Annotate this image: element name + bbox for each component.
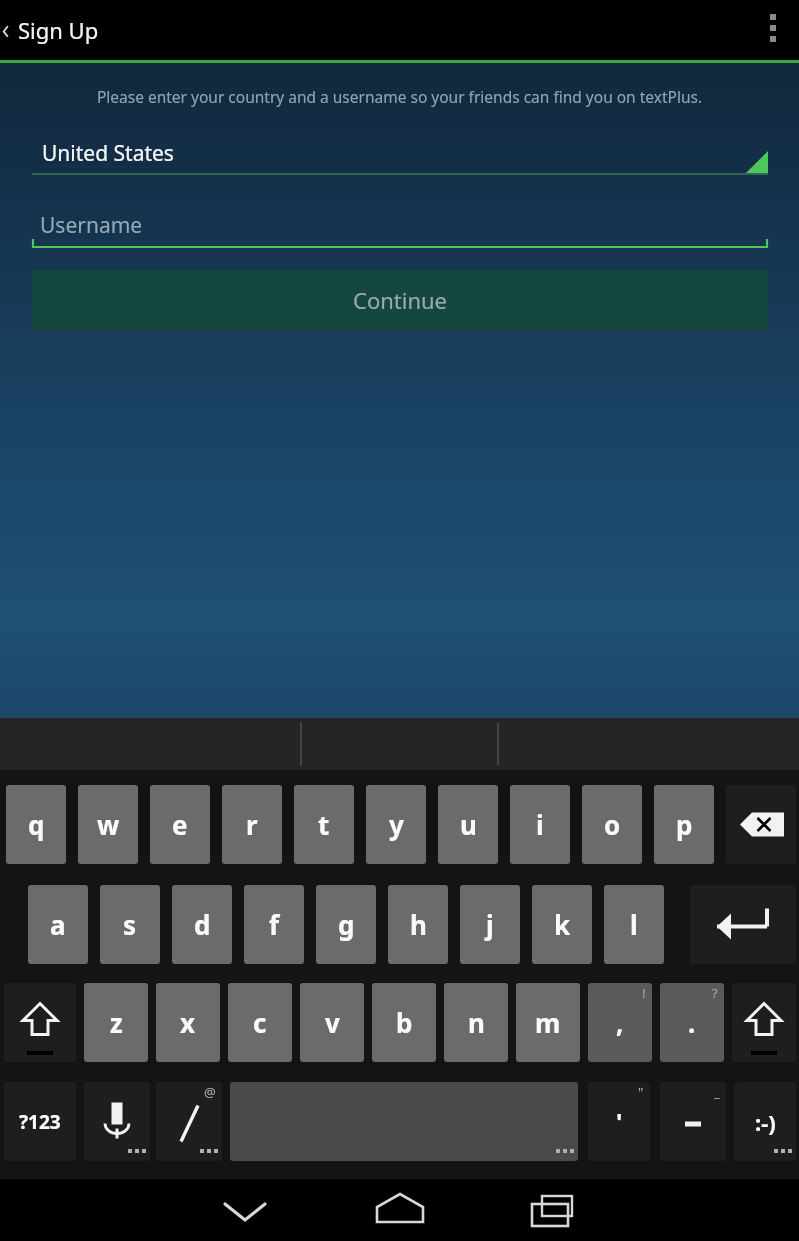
button[interactable]: , <box>588 983 652 1062</box>
staticText: o <box>604 807 621 842</box>
staticText: n <box>468 1005 485 1040</box>
button[interactable]: f <box>244 885 304 964</box>
button[interactable]: z <box>84 983 148 1062</box>
button[interactable]: l <box>604 885 664 964</box>
staticText: m <box>535 1005 561 1040</box>
button[interactable]: More options <box>743 0 799 60</box>
button[interactable]: m <box>516 983 580 1062</box>
staticText: s <box>123 907 137 942</box>
button[interactable]: United States <box>32 128 768 178</box>
button[interactable]: Backspace <box>726 785 796 864</box>
button[interactable]: d <box>172 885 232 964</box>
button[interactable]: Home <box>355 1179 445 1241</box>
button[interactable]: _ <box>660 1082 726 1161</box>
staticText: . <box>688 1005 696 1040</box>
staticText: _ <box>714 1083 720 1101</box>
button[interactable]: ' <box>588 1082 650 1161</box>
staticText: p <box>676 807 693 842</box>
staticText: Sign Up <box>18 15 99 45</box>
button[interactable]: h <box>388 885 448 964</box>
button[interactable]: ‹ <box>0 0 120 60</box>
staticText: z <box>110 1005 123 1040</box>
button[interactable]: ?123 <box>4 1082 76 1161</box>
button[interactable]: x <box>156 983 220 1062</box>
button[interactable]: t <box>294 785 354 864</box>
button[interactable]: s <box>100 885 160 964</box>
staticText: c <box>253 1005 267 1040</box>
button[interactable]: v <box>300 983 364 1062</box>
staticText: ‹ <box>2 10 10 47</box>
staticText: w <box>97 807 120 842</box>
button[interactable]: Enter <box>690 885 796 964</box>
button[interactable]: Continue <box>32 270 768 330</box>
staticText: i <box>536 807 544 842</box>
staticText: f <box>269 907 280 942</box>
staticText: g <box>338 907 355 942</box>
button[interactable]: y <box>366 785 426 864</box>
button[interactable]: Shift <box>4 983 76 1062</box>
staticText: ? <box>712 984 718 1002</box>
staticText: ?123 <box>19 1109 61 1135</box>
staticText: ' <box>616 1105 623 1138</box>
button[interactable]: . <box>660 983 724 1062</box>
staticText: " <box>638 1083 644 1101</box>
staticText: Please enter your country and a username… <box>0 86 799 107</box>
button[interactable]: Voice input <box>84 1082 150 1161</box>
button[interactable]: j <box>460 885 520 964</box>
staticText: @ <box>204 1083 216 1101</box>
button[interactable]: e <box>150 785 210 864</box>
button[interactable]: g <box>316 885 376 964</box>
button[interactable]: Space <box>230 1082 578 1161</box>
button[interactable]: w <box>78 785 138 864</box>
button[interactable]: i <box>510 785 570 864</box>
button[interactable]: @ <box>156 1082 222 1161</box>
button[interactable]: a <box>28 885 88 964</box>
button[interactable]: u <box>438 785 498 864</box>
button[interactable]: Shift <box>732 983 796 1062</box>
button[interactable]: p <box>654 785 714 864</box>
staticText: :-) <box>755 1107 776 1137</box>
staticText: a <box>50 907 66 942</box>
staticText: t <box>318 807 330 842</box>
staticText: k <box>554 907 571 942</box>
staticText: e <box>172 807 188 842</box>
staticText: Continue <box>353 285 448 315</box>
button[interactable]: n <box>444 983 508 1062</box>
staticText: United States <box>42 139 174 168</box>
button[interactable]: Recent apps <box>509 1179 599 1241</box>
staticText: , <box>616 1005 624 1040</box>
button[interactable]: :-) <box>734 1082 796 1161</box>
staticText: ! <box>642 984 646 1002</box>
button[interactable]: o <box>582 785 642 864</box>
staticText: d <box>194 907 211 942</box>
staticText: x <box>180 1005 196 1040</box>
staticText: y <box>389 807 404 842</box>
staticText: b <box>396 1005 413 1040</box>
button[interactable]: b <box>372 983 436 1062</box>
button[interactable]: r <box>222 785 282 864</box>
staticText: r <box>246 807 258 842</box>
button[interactable]: Username <box>32 202 768 250</box>
staticText: Username <box>40 211 143 240</box>
staticText: u <box>460 807 477 842</box>
staticText: j <box>486 907 494 942</box>
staticText: v <box>325 1005 340 1040</box>
staticText: l <box>630 907 638 942</box>
button[interactable]: c <box>228 983 292 1062</box>
button[interactable]: k <box>532 885 592 964</box>
staticText: h <box>410 907 427 942</box>
staticText: q <box>28 807 45 842</box>
button[interactable]: q <box>6 785 66 864</box>
button[interactable]: Hide keyboard <box>200 1179 290 1241</box>
